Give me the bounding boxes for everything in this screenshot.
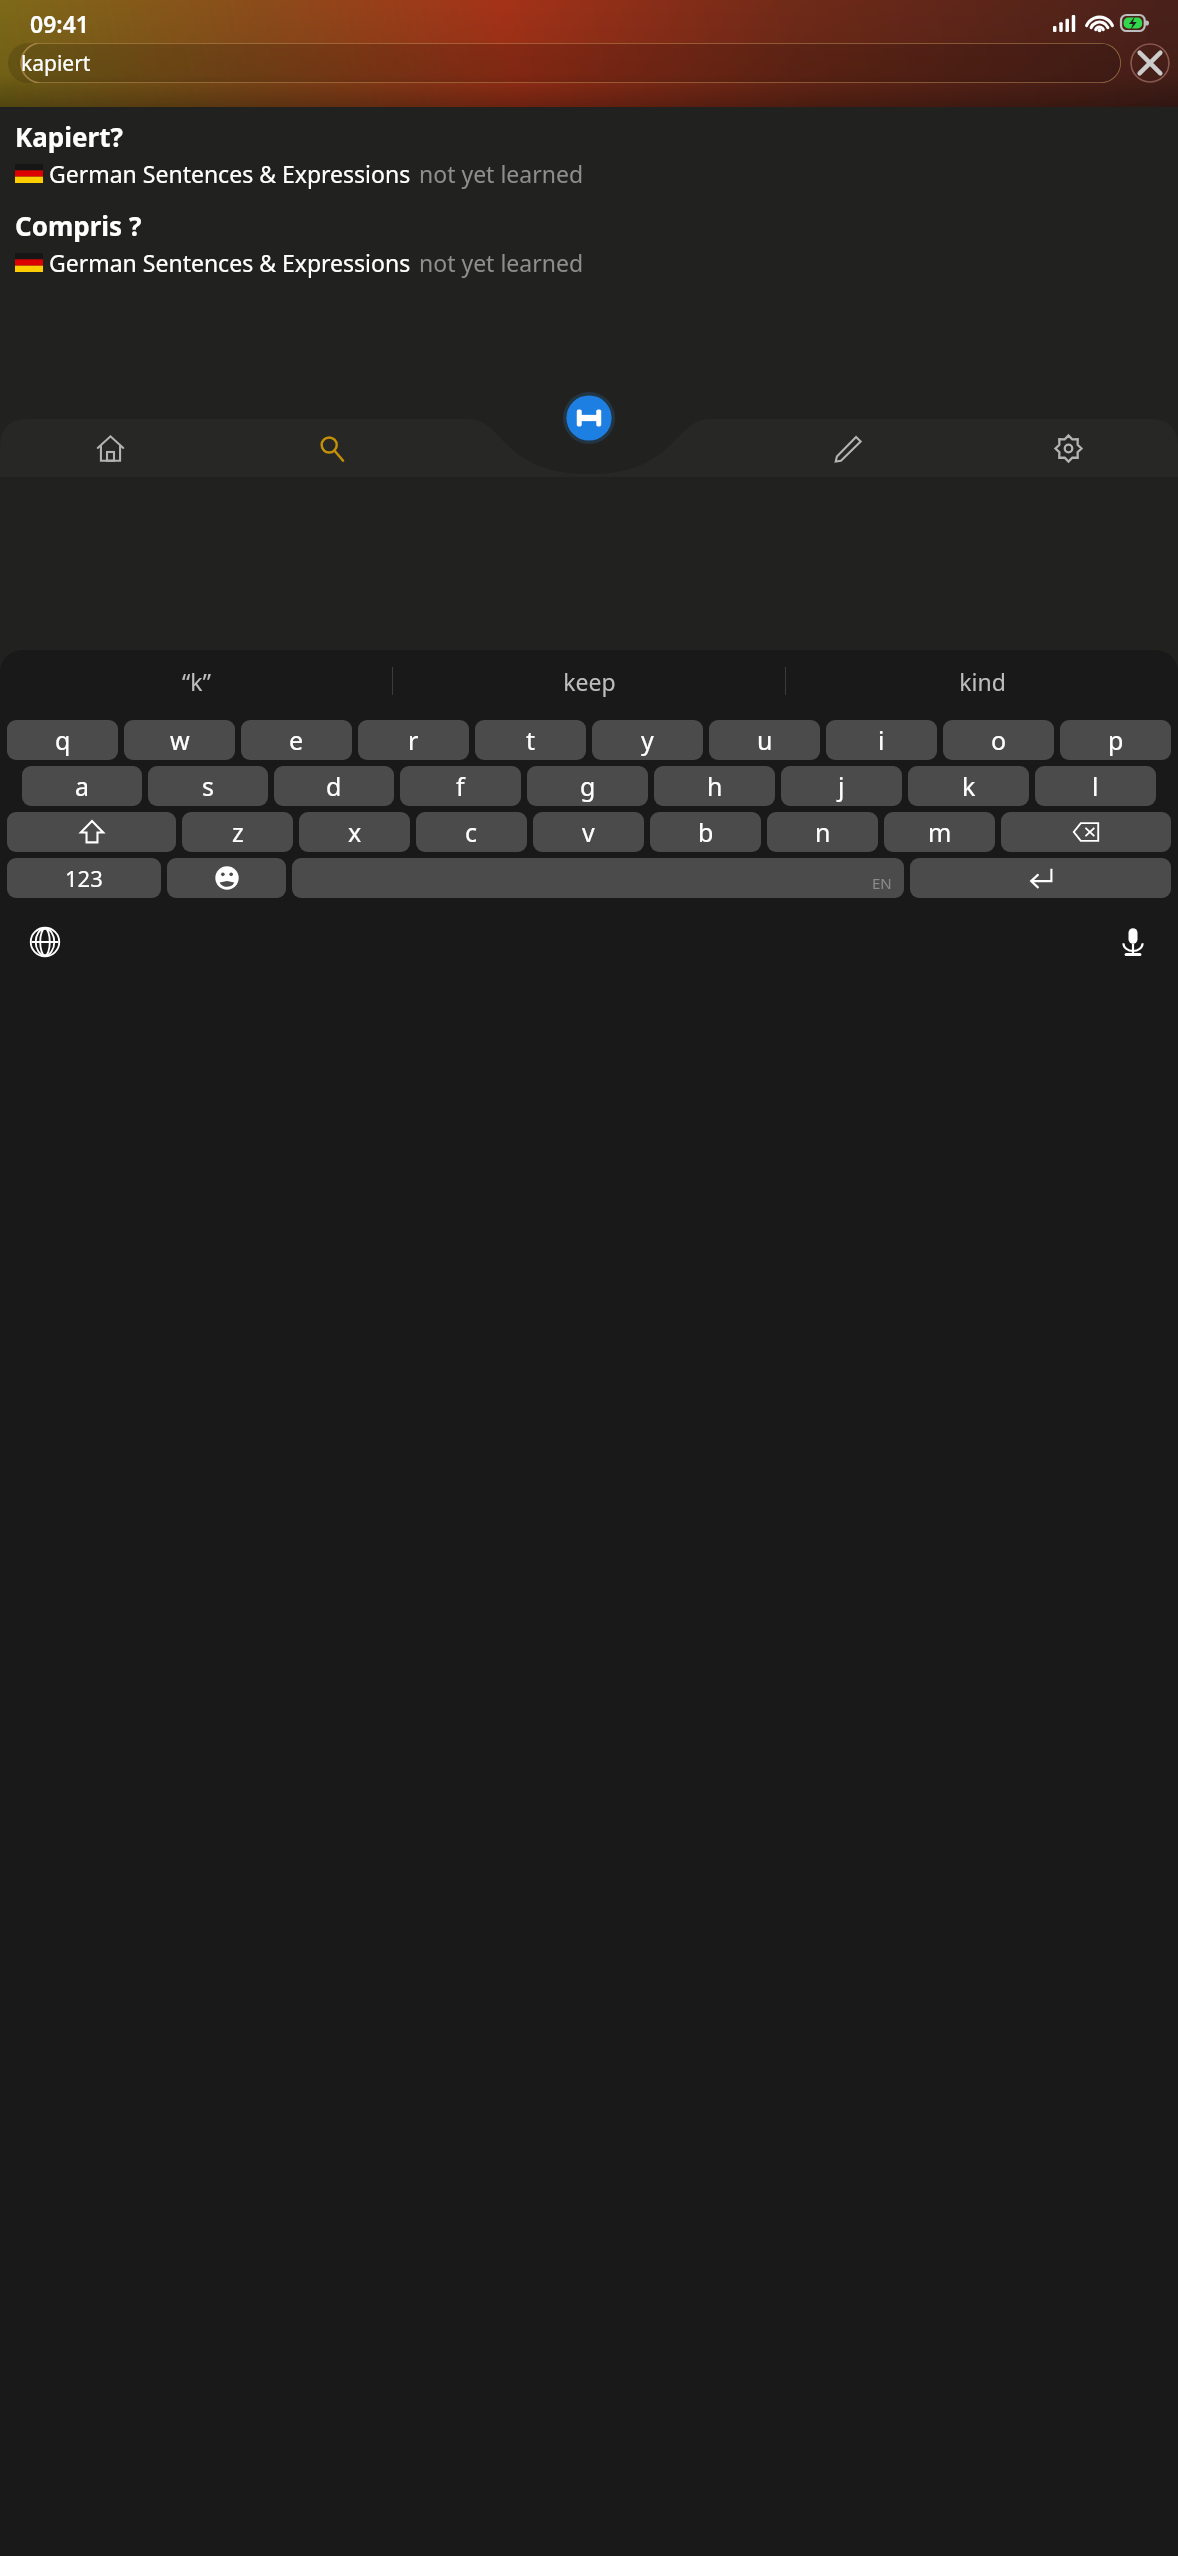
button[interactable]: “k” [0,650,392,712]
staticText: s [202,769,214,803]
button[interactable]: Shift [7,812,176,852]
button[interactable]: Emoji [167,858,286,898]
staticText: x [348,815,362,849]
button[interactable]: e [241,720,352,760]
staticText: g [580,769,596,803]
staticText: m [928,815,952,849]
staticText: r [408,723,419,757]
button[interactable]: Enter [910,858,1171,898]
button[interactable]: Practice [563,392,615,444]
button[interactable]: r [358,720,469,760]
button[interactable]: Edit [738,419,958,477]
button[interactable]: t [475,720,586,760]
button[interactable]: m [884,812,995,852]
button[interactable]: a [22,766,142,806]
staticText: not yet learned [419,158,584,189]
staticText: y [641,723,654,757]
button[interactable]: Backspace [1001,812,1171,852]
button[interactable]: g [527,766,648,806]
staticText: EN [872,873,892,893]
staticText: v [582,815,595,849]
staticText: German Sentences & Expressions [49,158,411,189]
button[interactable]: s [148,766,268,806]
button[interactable]: p [1060,720,1171,760]
staticText: u [757,723,773,757]
button[interactable]: l [1035,766,1156,806]
button[interactable]: Home [0,419,221,477]
staticText: h [707,769,723,803]
button[interactable]: h [654,766,775,806]
button[interactable]: Clear search [1130,43,1170,83]
staticText: b [698,815,714,849]
staticText: o [991,723,1007,757]
button[interactable]: 123 [7,858,161,898]
button[interactable]: y [592,720,703,760]
button[interactable]: n [767,812,878,852]
staticText: f [456,769,465,803]
button[interactable]: i [826,720,937,760]
staticText: kapiert [21,49,91,78]
button[interactable]: Voice input [1109,918,1157,966]
staticText: Compris ? [15,208,142,243]
button[interactable]: q [7,720,118,760]
button[interactable]: Change keyboard language [21,918,69,966]
staticText: not yet learned [419,247,584,278]
button[interactable]: Space [292,858,904,898]
staticText: z [232,815,244,849]
staticText: n [815,815,831,849]
button[interactable]: f [400,766,521,806]
staticText: “k” [182,666,211,697]
staticText: w [170,723,190,757]
staticText: Kapiert? [15,119,123,154]
staticText: i [878,723,885,757]
button[interactable]: z [182,812,293,852]
staticText: k [962,769,976,803]
button[interactable]: d [274,766,394,806]
button[interactable]: kind [786,650,1178,712]
button[interactable]: Settings [958,419,1178,477]
button[interactable]: x [299,812,410,852]
staticText: t [526,723,536,757]
staticText: a [75,769,90,803]
button[interactable]: w [124,720,235,760]
button[interactable]: b [650,812,761,852]
button[interactable]: kapiert [8,43,1121,83]
button[interactable]: o [943,720,1054,760]
staticText: j [838,769,845,803]
button[interactable]: c [416,812,527,852]
staticText: d [326,769,342,803]
staticText: kind [959,666,1006,697]
staticText: e [289,723,304,757]
button[interactable]: u [709,720,820,760]
button[interactable]: v [533,812,644,852]
button[interactable]: keep [393,650,785,712]
staticText: l [1092,769,1099,803]
button[interactable]: k [908,766,1029,806]
staticText: German Sentences & Expressions [49,247,411,278]
button[interactable]: Kapiert? [15,116,1178,192]
staticText: q [55,723,71,757]
staticText: p [1108,723,1124,757]
button[interactable]: j [781,766,902,806]
staticText: c [465,815,478,849]
button[interactable]: Search [221,419,441,477]
staticText: 123 [65,863,103,893]
staticText: 09:41 [30,8,89,39]
staticText: keep [563,666,616,697]
button[interactable]: Compris ? [15,205,1178,281]
